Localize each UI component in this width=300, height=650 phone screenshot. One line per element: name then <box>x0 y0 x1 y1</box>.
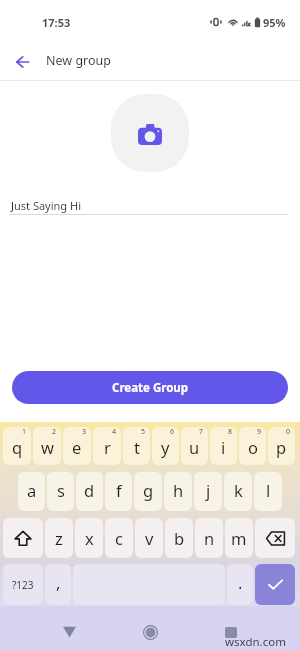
staticText: Create Group <box>112 380 189 396</box>
button[interactable]: l <box>254 472 282 511</box>
button[interactable]: 9 <box>239 427 266 465</box>
button[interactable]: j <box>194 472 222 511</box>
button[interactable]: Add group photo <box>111 94 189 172</box>
staticText: j <box>206 479 211 501</box>
staticText: h <box>173 479 184 501</box>
staticText: p <box>276 436 287 458</box>
staticText: c <box>115 527 123 549</box>
button[interactable]: x <box>75 518 103 558</box>
staticText: ?123 <box>12 578 34 592</box>
staticText: . <box>238 571 243 593</box>
staticText: y <box>161 436 170 458</box>
button[interactable]: b <box>165 518 193 558</box>
button[interactable]: Create Group <box>12 371 288 404</box>
button[interactable]: n <box>195 518 223 558</box>
staticText: k <box>234 479 243 501</box>
staticText: e <box>72 436 82 458</box>
button[interactable]: 8 <box>210 427 237 465</box>
staticText: f <box>116 479 122 501</box>
staticText: g <box>143 479 154 501</box>
button[interactable]: 7 <box>181 427 208 465</box>
staticText: m <box>231 527 247 549</box>
staticText: 4 <box>112 427 117 437</box>
button[interactable]: 3 <box>63 427 91 465</box>
button[interactable]: Home <box>134 619 166 645</box>
staticText: l <box>266 479 271 501</box>
staticText: q <box>12 436 23 458</box>
staticText: 6 <box>170 427 175 437</box>
staticText: s <box>57 479 65 501</box>
button[interactable]: s <box>47 472 74 511</box>
staticText: 7 <box>199 427 204 437</box>
staticText: 1 <box>22 427 27 437</box>
staticText: z <box>55 527 63 549</box>
button[interactable]: 0 <box>268 427 295 465</box>
button[interactable]: f <box>105 472 132 511</box>
button[interactable]: c <box>105 518 133 558</box>
staticText: b <box>174 527 185 549</box>
button[interactable]: k <box>224 472 252 511</box>
button[interactable]: d <box>76 472 103 511</box>
staticText: 9 <box>257 427 262 437</box>
button[interactable]: , <box>45 564 71 605</box>
staticText: u <box>189 436 200 458</box>
button[interactable]: h <box>164 472 192 511</box>
button[interactable]: 5 <box>123 427 150 465</box>
staticText: 3 <box>82 427 87 437</box>
staticText: wsxdn.com <box>225 634 286 650</box>
staticText: Just Saying Hi <box>11 198 81 213</box>
button[interactable]: . <box>227 564 253 605</box>
button[interactable]: 2 <box>33 427 61 465</box>
staticText: r <box>104 436 111 458</box>
staticText: i <box>221 436 226 458</box>
staticText: 95% <box>263 15 286 30</box>
staticText: 5 <box>141 427 146 437</box>
staticText: New group <box>46 52 111 69</box>
button[interactable]: ?123 <box>3 564 43 605</box>
staticText: x <box>85 527 94 549</box>
button[interactable]: Back <box>2 42 42 82</box>
button[interactable]: g <box>134 472 162 511</box>
staticText: w <box>41 436 54 458</box>
staticText: d <box>84 479 95 501</box>
staticText: 17:53 <box>42 15 71 30</box>
button[interactable]: v <box>135 518 163 558</box>
staticText: v <box>145 527 154 549</box>
staticText: n <box>204 527 215 549</box>
button[interactable]: 6 <box>152 427 179 465</box>
staticText: o <box>248 436 258 458</box>
button[interactable]: z <box>45 518 73 558</box>
staticText: t <box>134 436 140 458</box>
button[interactable]: 4 <box>93 427 121 465</box>
button[interactable]: Backspace <box>255 518 295 558</box>
button[interactable]: Shift <box>3 518 43 558</box>
button[interactable]: 1 <box>3 427 31 465</box>
staticText: 0 <box>286 427 291 437</box>
button[interactable]: Back <box>53 619 85 645</box>
button[interactable]: a <box>18 472 45 511</box>
staticText: , <box>56 571 61 593</box>
button[interactable]: Recents <box>215 619 247 645</box>
button[interactable]: Enter <box>255 564 295 605</box>
button[interactable]: m <box>225 518 253 558</box>
staticText: 8 <box>228 427 233 437</box>
staticText: 2 <box>52 427 57 437</box>
staticText: a <box>27 479 37 501</box>
